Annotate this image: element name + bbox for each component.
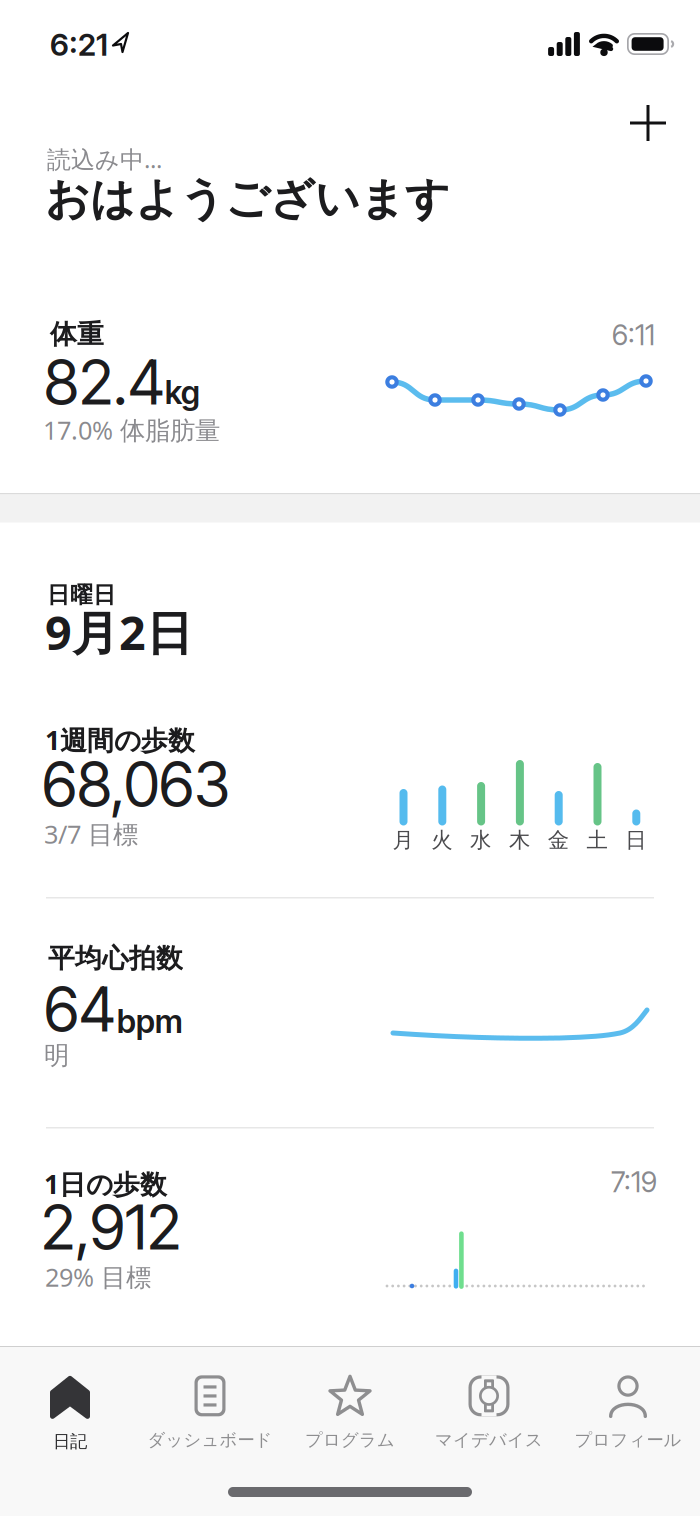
staticText: マイデバイス	[435, 1429, 543, 1451]
button[interactable]: 平均心拍数	[0, 898, 700, 1128]
staticText: 土	[586, 827, 607, 853]
staticText: 29% 目標	[45, 1260, 151, 1294]
staticText: 1日の歩数	[44, 1166, 167, 1201]
button[interactable]: 1日の歩数	[0, 1128, 700, 1346]
staticText: 64	[44, 972, 115, 1046]
staticText: 6:11	[612, 318, 655, 352]
button[interactable]: ダッシュボード	[142, 1363, 278, 1463]
staticText: bpm	[117, 1002, 183, 1041]
staticText: 6:21	[50, 26, 108, 63]
staticText: 金	[548, 827, 569, 853]
staticText: 7:19	[611, 1165, 657, 1199]
staticText: kg	[165, 373, 200, 412]
staticText: 平均心拍数	[48, 942, 183, 975]
button[interactable]: プログラム	[285, 1363, 415, 1463]
staticText: 82.4	[44, 345, 164, 419]
staticText: 体重	[50, 318, 104, 351]
staticText: 3/7 目標	[44, 817, 138, 851]
staticText: 日曜日	[47, 581, 116, 609]
staticText: 1週間の歩数	[45, 722, 195, 757]
staticText: 木	[509, 827, 530, 853]
staticText: ダッシュボード	[147, 1429, 272, 1451]
staticText: プロフィール	[574, 1429, 681, 1451]
button[interactable]: 追加	[626, 101, 670, 145]
staticText: 2,912	[41, 1190, 181, 1264]
staticText: 17.0% 体脂肪量	[43, 413, 220, 447]
staticText: 読込み中...	[47, 143, 162, 175]
button[interactable]: 日記	[5, 1364, 135, 1464]
button[interactable]: プロフィール	[563, 1363, 693, 1463]
button[interactable]: マイデバイス	[424, 1363, 554, 1463]
staticText: 明	[44, 1040, 69, 1071]
staticText: おはようございます	[45, 172, 450, 226]
staticText: 日記	[53, 1431, 87, 1452]
button[interactable]: 1週間の歩数	[0, 690, 700, 898]
staticText: 水	[470, 827, 491, 853]
staticText: 9月2日	[45, 601, 193, 663]
staticText: 日	[625, 827, 646, 853]
staticText: 月	[392, 827, 413, 853]
button[interactable]: 体重	[0, 270, 700, 494]
staticText: プログラム	[305, 1429, 395, 1451]
staticText: 火	[431, 827, 452, 853]
staticText: 68,063	[42, 747, 230, 821]
